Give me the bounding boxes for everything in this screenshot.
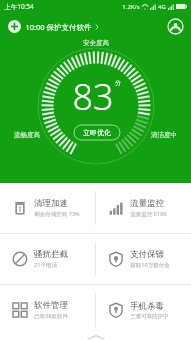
staticText: 流量监控 519K bbox=[130, 210, 167, 218]
staticText: 骚扰拦截 bbox=[34, 249, 68, 260]
staticText: 剩余存储空间 73% bbox=[34, 210, 80, 218]
button[interactable]: 立即优化 bbox=[73, 124, 121, 141]
button[interactable]: Account bbox=[165, 16, 185, 36]
button[interactable]: 骚扰拦截 bbox=[0, 234, 95, 284]
staticText: 立即优化 bbox=[83, 128, 111, 137]
staticText: 软件管理 bbox=[34, 300, 68, 311]
staticText: 1.2K/s bbox=[122, 3, 140, 11]
staticText: 手机杀毒 bbox=[130, 301, 164, 312]
staticText: 支付保镖 bbox=[130, 249, 164, 260]
staticText: 4G bbox=[158, 3, 166, 11]
button[interactable]: 流量监控 bbox=[96, 183, 191, 233]
button[interactable]: 10:00 保护支付软件 bbox=[6, 18, 101, 35]
staticText: 清理加速 bbox=[34, 198, 68, 209]
staticText: 上午10:54 bbox=[4, 2, 34, 11]
staticText: 21个电话 bbox=[34, 261, 57, 269]
staticText: 83 bbox=[72, 72, 114, 121]
button[interactable]: Expand bbox=[0, 335, 191, 340]
staticText: 10:00 保护支付软件 bbox=[25, 22, 92, 32]
staticText: 流量监控 bbox=[130, 198, 164, 209]
staticText: 三重可靠防护中 bbox=[130, 313, 169, 320]
staticText: 获取10万赔付金 bbox=[130, 261, 170, 269]
button[interactable]: 手机杀毒 bbox=[96, 285, 191, 335]
staticText: 安全度高 bbox=[83, 39, 109, 47]
staticText: 清洁度中 bbox=[151, 131, 177, 139]
button[interactable]: 软件管理 bbox=[0, 285, 95, 335]
staticText: 已装38款软件 bbox=[34, 312, 68, 320]
staticText: 流畅度高 bbox=[14, 131, 40, 139]
button[interactable]: 清理加速 bbox=[0, 183, 95, 233]
staticText: 分 bbox=[115, 79, 121, 87]
button[interactable]: 支付保镖 bbox=[96, 234, 191, 284]
